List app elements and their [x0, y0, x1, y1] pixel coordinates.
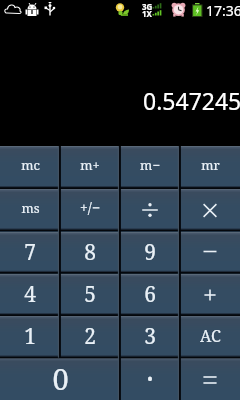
button[interactable]: 1: [0, 316, 60, 358]
staticText: 8: [84, 238, 96, 267]
button[interactable]: Equals: [180, 358, 240, 400]
button[interactable]: Divide: [120, 189, 180, 232]
staticText: 0.547245: [143, 85, 240, 116]
staticText: 1: [24, 322, 36, 351]
button[interactable]: Plus: [180, 274, 240, 316]
staticText: 1X: [142, 8, 152, 19]
button[interactable]: 4: [0, 274, 60, 316]
button[interactable]: mc: [0, 146, 60, 189]
staticText: 2: [84, 322, 96, 351]
button[interactable]: 5: [60, 274, 120, 316]
staticText: ms: [21, 199, 40, 217]
staticText: AC: [200, 325, 221, 347]
staticText: m+: [80, 156, 100, 174]
staticText: 5: [84, 280, 96, 309]
staticText: 17:36: [206, 1, 240, 20]
staticText: 0: [52, 359, 69, 398]
button[interactable]: 9: [120, 232, 180, 274]
button[interactable]: Minus: [180, 232, 240, 274]
staticText: 3: [144, 322, 156, 351]
button[interactable]: Memory minus: [120, 146, 180, 189]
button[interactable]: m+: [60, 146, 120, 189]
button[interactable]: 6: [120, 274, 180, 316]
button[interactable]: 2: [60, 316, 120, 358]
button[interactable]: Multiply: [180, 189, 240, 232]
staticText: mr: [201, 156, 220, 174]
staticText: 9: [144, 238, 156, 267]
staticText: 4: [24, 280, 36, 309]
staticText: .: [146, 349, 154, 390]
staticText: 7: [24, 238, 36, 267]
staticText: 3G: [142, 1, 153, 12]
staticText: mc: [21, 156, 40, 174]
button[interactable]: mr: [180, 146, 240, 189]
staticText: m−: [140, 156, 160, 174]
button[interactable]: 0: [0, 358, 120, 400]
button[interactable]: ms: [0, 189, 60, 232]
button[interactable]: 8: [60, 232, 120, 274]
button[interactable]: 3: [120, 316, 180, 358]
staticText: +/−: [80, 198, 100, 217]
staticText: 6: [144, 280, 156, 309]
button[interactable]: Plus minus sign: [60, 189, 120, 232]
button[interactable]: Decimal point: [120, 358, 180, 400]
button[interactable]: 7: [0, 232, 60, 274]
button[interactable]: AC: [180, 316, 240, 358]
